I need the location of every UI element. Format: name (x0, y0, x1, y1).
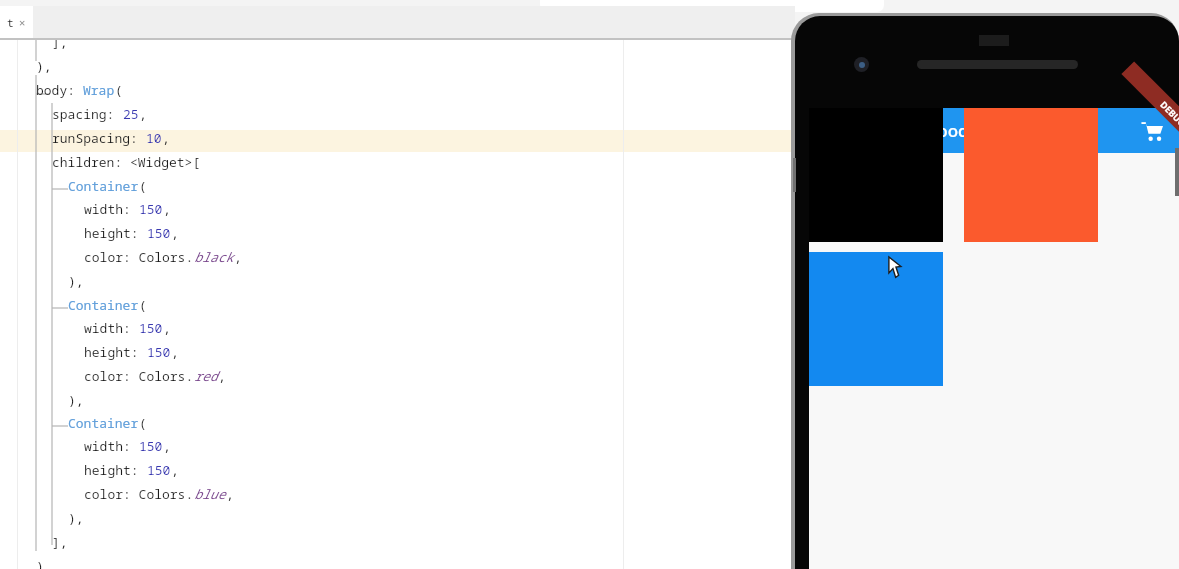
staticText: red (194, 367, 218, 385)
staticText: Hello world! Good job (823, 119, 999, 142)
staticText: ), (68, 391, 84, 409)
staticText: , (171, 224, 179, 242)
staticText: 150 (139, 200, 163, 218)
staticText: ], (52, 33, 68, 51)
staticText: spacing: (52, 105, 123, 123)
staticText: , (171, 461, 179, 479)
staticText: 150 (139, 437, 163, 455)
staticText: ( (139, 414, 147, 432)
staticText: ( (115, 81, 123, 99)
staticText: 10 (146, 129, 162, 147)
staticText: t (7, 15, 14, 30)
staticText: body: (36, 81, 83, 99)
button[interactable]: Shopping cart (1135, 114, 1169, 148)
staticText: height: (84, 461, 147, 479)
staticText: , (226, 485, 234, 503)
staticText: width: (84, 319, 139, 337)
staticText: ), (68, 272, 84, 290)
staticText: 150 (147, 343, 171, 361)
staticText: Container (68, 414, 139, 432)
staticText: 150 (139, 319, 163, 337)
staticText: color: Colors. (84, 367, 194, 385)
staticText: ( (139, 177, 147, 195)
staticText: × (19, 15, 26, 30)
staticText: , (163, 437, 171, 455)
staticText: , (162, 129, 170, 147)
button[interactable] (809, 252, 943, 386)
staticText: ), (36, 57, 52, 75)
staticText: 150 (147, 224, 171, 242)
staticText: , (171, 343, 179, 361)
staticText: DEBUG (1158, 98, 1179, 129)
staticText: width: (84, 437, 139, 455)
staticText: color: Colors. (84, 248, 194, 266)
staticText: ( (139, 296, 147, 314)
staticText: 150 (147, 461, 171, 479)
staticText: , (218, 367, 226, 385)
staticText: 25 (123, 105, 139, 123)
staticText: Container (68, 177, 139, 195)
staticText: children: <Widget>[ (52, 153, 201, 171)
staticText: color: Colors. (84, 485, 194, 503)
staticText: ], (52, 533, 68, 551)
staticText: ) (36, 557, 44, 569)
staticText: runSpacing: (52, 129, 146, 147)
staticText: width: (84, 200, 139, 218)
staticText: , (139, 105, 147, 123)
staticText: height: (84, 343, 147, 361)
staticText: Wrap (83, 81, 115, 99)
staticText: ), (68, 509, 84, 527)
staticText: black (194, 248, 234, 266)
staticText: height: (84, 224, 147, 242)
staticText: , (163, 319, 171, 337)
staticText: , (163, 200, 171, 218)
staticText: Container (68, 296, 139, 314)
button[interactable]: t (0, 6, 33, 39)
staticText: , (234, 248, 242, 266)
staticText: blue (194, 485, 226, 503)
